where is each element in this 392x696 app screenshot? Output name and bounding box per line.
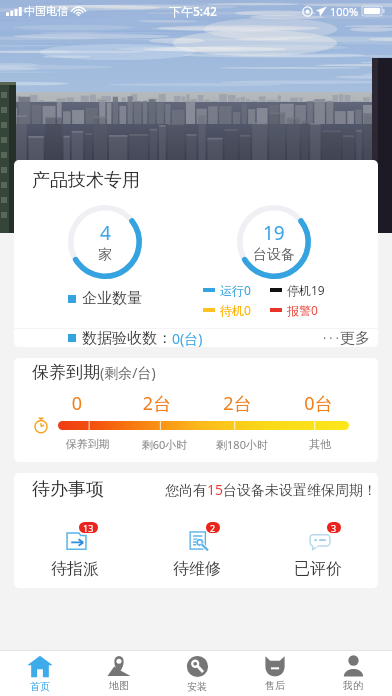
button[interactable]: · · · bbox=[323, 329, 370, 347]
staticText: 首页 bbox=[30, 680, 50, 693]
button[interactable]: 3 bbox=[257, 522, 378, 579]
staticText: 保养到期 bbox=[49, 437, 126, 451]
staticText: 数据验收数： bbox=[82, 329, 172, 347]
staticText: 4 bbox=[100, 220, 111, 246]
staticText: (剩余/台) bbox=[100, 363, 156, 382]
staticText: 台设备 bbox=[253, 246, 295, 264]
button[interactable]: 地图 bbox=[79, 651, 158, 696]
staticText: 2台 bbox=[197, 391, 278, 416]
button[interactable]: 13 bbox=[14, 522, 136, 579]
staticText: 保养到期 bbox=[32, 362, 100, 383]
staticText: 家 bbox=[98, 246, 112, 264]
staticText: 0(台) bbox=[172, 329, 203, 347]
staticText: 已评价 bbox=[294, 559, 342, 579]
staticText: 报警0 bbox=[287, 302, 318, 318]
button[interactable]: 我的 bbox=[314, 651, 392, 696]
staticText: 运行0 bbox=[220, 282, 251, 298]
staticText: 待指派 bbox=[51, 559, 99, 579]
staticText: 产品技术专用 bbox=[32, 169, 140, 192]
staticText: 您尚有15台设备未设置维保周期！ bbox=[165, 480, 378, 499]
staticText: 售后 bbox=[265, 679, 285, 692]
button[interactable]: 售后 bbox=[236, 651, 314, 696]
staticText: 企业数量 bbox=[82, 289, 142, 308]
staticText: 地图 bbox=[109, 679, 129, 692]
staticText: 安装 bbox=[187, 680, 207, 693]
staticText: 100% bbox=[330, 4, 359, 19]
staticText: 待机0 bbox=[220, 302, 251, 318]
staticText: · · · bbox=[323, 330, 339, 346]
button[interactable]: 2 bbox=[136, 522, 257, 579]
staticText: 待维修 bbox=[173, 559, 221, 579]
staticText: 0 bbox=[37, 391, 117, 416]
staticText: 2 bbox=[210, 522, 216, 533]
staticText: 19 bbox=[263, 220, 285, 246]
staticText: 剩180小时 bbox=[203, 437, 281, 452]
staticText: 待办事项 bbox=[32, 478, 104, 501]
button[interactable]: 安装 bbox=[158, 651, 236, 696]
staticText: 13 bbox=[83, 522, 94, 533]
staticText: 中国电信 bbox=[24, 4, 68, 18]
staticText: 更多 bbox=[340, 329, 370, 347]
staticText: 2台 bbox=[117, 391, 197, 416]
staticText: 我的 bbox=[343, 679, 363, 692]
staticText: 剩60小时 bbox=[126, 437, 203, 452]
staticText: 3 bbox=[331, 522, 337, 533]
staticText: 停机19 bbox=[287, 282, 325, 298]
staticText: 0台 bbox=[278, 391, 359, 416]
staticText: 其他 bbox=[281, 437, 359, 451]
button[interactable]: 首页 bbox=[0, 651, 79, 696]
staticText: 下午5:42 bbox=[169, 3, 217, 19]
